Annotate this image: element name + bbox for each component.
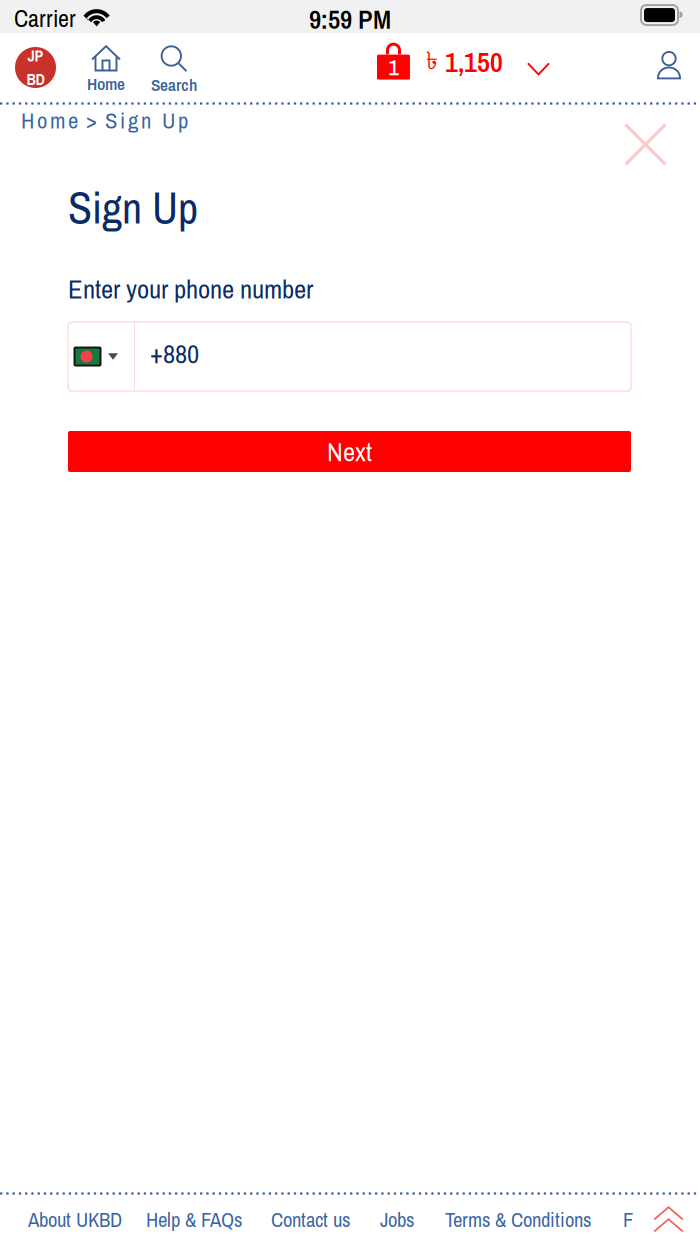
staticText: Enter your phone number [68, 271, 313, 307]
button[interactable]: Select country code [68, 322, 135, 391]
staticText: Contact us [271, 1206, 350, 1233]
button[interactable]: Close [624, 123, 667, 166]
button[interactable]: Help & FAQs [146, 1206, 242, 1233]
button[interactable]: 1 [377, 41, 550, 79]
button[interactable]: H o m e > S i g n U p [21, 105, 188, 135]
staticText: BD [26, 68, 44, 90]
staticText: 9:59 PM [309, 1, 391, 37]
staticText: Carrier [14, 2, 76, 34]
button[interactable]: Terms & Conditions [445, 1206, 591, 1233]
button[interactable]: Home [86, 45, 126, 95]
button[interactable]: Next [68, 431, 631, 472]
staticText: Sign Up [68, 178, 198, 237]
button[interactable]: About UKBD [28, 1206, 122, 1233]
staticText: Help & FAQs [146, 1206, 242, 1233]
staticText: Terms & Conditions [445, 1206, 591, 1233]
staticText: 1,150 [445, 43, 503, 81]
button[interactable]: Account [657, 51, 681, 79]
staticText: Jobs [380, 1206, 414, 1233]
staticText: Home [87, 72, 125, 95]
staticText: Next [327, 433, 372, 469]
staticText: F [623, 1206, 633, 1233]
staticText: 1 [388, 52, 398, 82]
button[interactable]: Jobs [380, 1206, 414, 1233]
staticText: About UKBD [28, 1206, 122, 1233]
button[interactable]: Back to top [653, 1206, 684, 1233]
button[interactable]: UKBD home [9, 42, 62, 93]
staticText: Search [151, 73, 197, 96]
staticText: ৳ [426, 45, 438, 79]
staticText: JP [27, 45, 43, 66]
button[interactable]: Contact us [271, 1206, 350, 1233]
button[interactable]: Search [150, 45, 198, 96]
staticText: H o m e > S i g n U p [21, 105, 188, 135]
staticText: +880 [150, 335, 199, 371]
